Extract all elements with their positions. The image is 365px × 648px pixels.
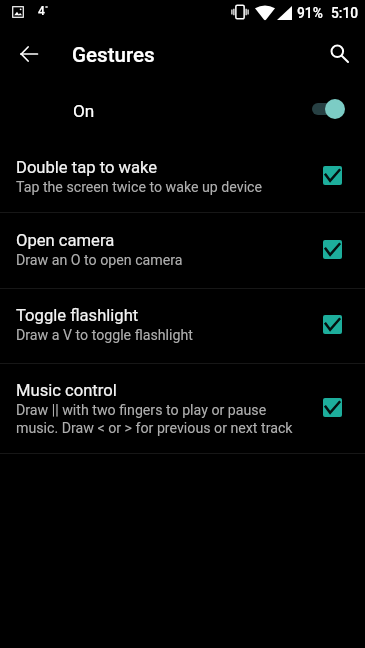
staticText: 91% — [297, 5, 323, 21]
button[interactable]: Search — [319, 33, 359, 73]
button[interactable]: Back — [10, 34, 48, 72]
button[interactable]: Double tap to wake — [0, 137, 365, 212]
staticText: Double tap to wake — [16, 158, 158, 177]
button[interactable]: Toggle flashlight — [0, 289, 365, 363]
staticText: 5:10 — [331, 5, 359, 21]
staticText: Gestures — [72, 43, 155, 67]
button[interactable]: On — [0, 81, 365, 137]
staticText: On — [73, 101, 95, 121]
staticText: Toggle flashlight — [16, 306, 139, 325]
staticText: 4 — [38, 4, 45, 18]
staticText: ° — [45, 4, 49, 13]
staticText: Draw an O to open camera — [16, 252, 183, 269]
staticText: Draw a V to toggle flashlight — [16, 327, 193, 344]
staticText: Music control — [16, 381, 117, 400]
staticText: Open camera — [16, 231, 115, 250]
button[interactable]: Music control — [0, 364, 365, 453]
staticText: Draw || with two fingers to play or paus… — [16, 402, 293, 437]
button[interactable]: Open camera — [0, 213, 365, 288]
staticText: Tap the screen twice to wake up device — [16, 179, 263, 196]
